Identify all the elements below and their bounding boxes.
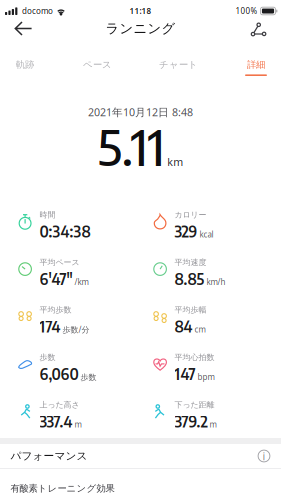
staticText: 平均心拍数 [175, 352, 215, 362]
button[interactable]: 軌跡 [8, 56, 42, 82]
staticText: 軌跡 [16, 59, 34, 70]
button[interactable]: チャート [153, 56, 204, 82]
staticText: 337.4 [40, 412, 73, 431]
staticText: 0:34:38 [40, 222, 91, 241]
button[interactable]: パフォーマンス [0, 444, 281, 468]
staticText: チャート [159, 59, 198, 70]
staticText: 329 [175, 222, 198, 241]
staticText: 11:18 [129, 6, 151, 16]
button[interactable]: Share route [241, 13, 276, 43]
staticText: 174 [40, 317, 61, 336]
button[interactable]: 詳細 [239, 56, 273, 82]
staticText: 歩数 [81, 372, 97, 382]
staticText: 100% [235, 6, 257, 16]
staticText: cm [195, 324, 206, 335]
staticText: 有酸素トレーニング効果 [10, 483, 114, 494]
staticText: 6,060 [40, 364, 79, 383]
staticText: kcal [200, 229, 214, 240]
staticText: 5.11 [98, 115, 165, 177]
staticText: ペース [83, 59, 112, 70]
staticText: bpm [198, 372, 215, 382]
staticText: 時間 [40, 210, 56, 220]
staticText: パフォーマンス [10, 449, 87, 462]
staticText: ランニング [105, 20, 175, 37]
staticText: 上った高さ [40, 400, 80, 410]
staticText: 8.85 [175, 269, 205, 288]
staticText: m [210, 419, 217, 430]
staticText: 2021年10月12日 8:48 [88, 105, 193, 119]
button[interactable]: Back [5, 14, 41, 43]
staticText: 詳細 [247, 59, 265, 70]
staticText: 平均歩幅 [175, 305, 207, 315]
staticText: カロリー [175, 210, 207, 220]
staticText: 6'47" [40, 269, 73, 288]
staticText: 平均ペース [40, 257, 80, 267]
staticText: /km [75, 277, 89, 287]
staticText: km [167, 155, 183, 169]
button[interactable]: ペース [77, 56, 118, 82]
staticText: docomo [22, 6, 53, 16]
staticText: 下った距離 [175, 400, 215, 410]
staticText: 84 [175, 317, 193, 336]
staticText: 歩数 [40, 352, 56, 362]
staticText: i [262, 449, 265, 463]
staticText: 歩数/分 [63, 324, 90, 335]
staticText: 379.2 [175, 412, 208, 431]
staticText: 平均歩数 [40, 305, 72, 315]
staticText: 平均速度 [175, 257, 207, 267]
staticText: 147 [175, 364, 196, 383]
staticText: m [75, 419, 82, 430]
staticText: km/h [207, 277, 226, 287]
